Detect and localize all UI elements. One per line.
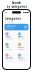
staticText: 38 today [18, 49, 24, 50]
button[interactable]: Museums [4, 53, 16, 62]
staticText: 64 routes [18, 38, 25, 40]
staticText: Museums [5, 57, 12, 59]
staticText: 9:41 [4, 12, 7, 13]
button[interactable]: Flights [17, 31, 28, 41]
staticText: Events [18, 46, 24, 48]
staticText: Flights [18, 36, 23, 38]
staticText: Summer deals [6, 25, 16, 27]
staticText: by categories [6, 5, 26, 8]
staticText: Up to 40% off [6, 27, 14, 29]
staticText: Search [12, 1, 21, 5]
staticText: Parks [18, 57, 23, 59]
staticText: 128 places [5, 38, 13, 40]
staticText: Cafes [5, 46, 9, 48]
staticText: 210 spots [5, 49, 12, 50]
button[interactable]: Parks [17, 53, 28, 62]
button[interactable]: Events [17, 42, 28, 52]
staticText: Hotels [5, 36, 10, 38]
staticText: Browse all topics [5, 21, 16, 23]
staticText: Categories [5, 17, 21, 20]
button[interactable]: Cafes [4, 42, 16, 52]
staticText: 12 open [5, 59, 11, 61]
button[interactable]: Hotels [4, 31, 16, 41]
button[interactable]: Summer deals [4, 24, 28, 30]
